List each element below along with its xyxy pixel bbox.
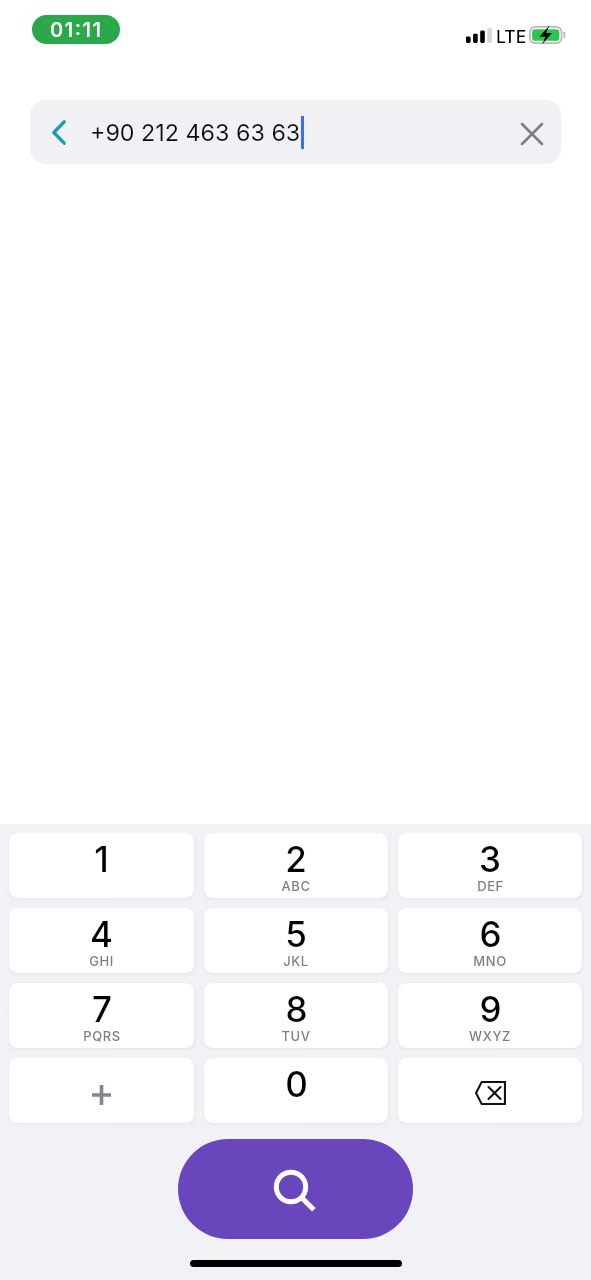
- staticText: 01:11: [50, 17, 103, 42]
- staticText: GHI: [89, 953, 114, 969]
- staticText: 5: [285, 913, 307, 955]
- staticText: DEF: [477, 878, 504, 894]
- button[interactable]: Search: [178, 1139, 413, 1239]
- staticText: 1: [94, 838, 109, 880]
- staticText: 9: [479, 988, 502, 1030]
- button[interactable]: Backspace: [398, 1058, 582, 1123]
- staticText: +90 212 463 63 63: [90, 118, 301, 146]
- button[interactable]: 3: [398, 833, 582, 898]
- staticText: 3: [479, 838, 501, 880]
- button[interactable]: 8: [204, 983, 388, 1048]
- button[interactable]: 6: [398, 908, 582, 973]
- staticText: 2: [285, 838, 307, 880]
- staticText: 4: [90, 913, 113, 955]
- button[interactable]: 1: [9, 833, 194, 898]
- staticText: MNO: [473, 953, 507, 969]
- staticText: 7: [92, 988, 112, 1030]
- staticText: ABC: [281, 878, 311, 894]
- button[interactable]: [9, 1058, 194, 1123]
- button[interactable]: Clear: [512, 114, 552, 154]
- button[interactable]: Back: [39, 112, 79, 152]
- button[interactable]: 5: [204, 908, 388, 973]
- staticText: TUV: [281, 1028, 311, 1044]
- staticText: WXYZ: [469, 1028, 511, 1044]
- staticText: 6: [479, 913, 502, 955]
- button[interactable]: 0: [204, 1058, 388, 1123]
- staticText: JKL: [283, 953, 309, 969]
- button[interactable]: 2: [204, 833, 388, 898]
- button[interactable]: 7: [9, 983, 194, 1048]
- button[interactable]: 4: [9, 908, 194, 973]
- staticText: LTE: [496, 26, 527, 47]
- staticText: 0: [285, 1063, 308, 1105]
- staticText: 8: [285, 988, 308, 1030]
- button[interactable]: Back: [30, 100, 561, 164]
- button[interactable]: 9: [398, 983, 582, 1048]
- staticText: PQRS: [83, 1028, 121, 1044]
- other: Backspace: [398, 1058, 582, 1123]
